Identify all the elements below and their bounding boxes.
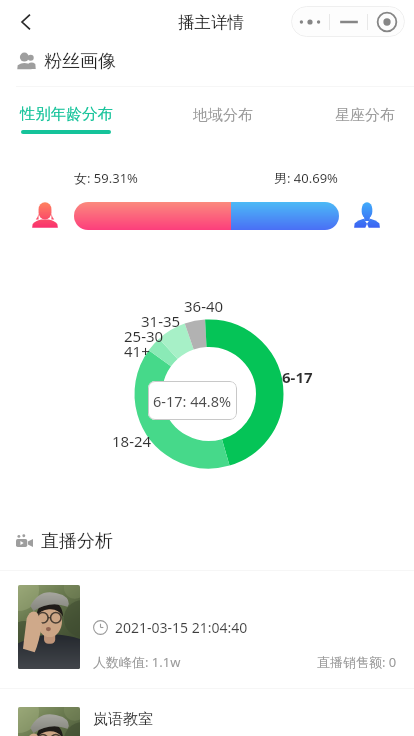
staticText: 直播分析	[41, 530, 113, 553]
staticText: 直播销售额: 0	[317, 653, 397, 671]
button[interactable]: 2021-03-15 21:04:40	[0, 571, 414, 688]
staticText: 6-17: 44.8%	[153, 391, 232, 411]
button[interactable]: 性别年龄分布	[6, 93, 126, 134]
staticText: 性别年龄分布	[20, 104, 113, 124]
staticText: 25-30	[124, 326, 164, 346]
staticText: 粉丝画像	[44, 50, 116, 73]
staticText: 6-17	[282, 367, 313, 387]
staticText: 播主详情	[178, 12, 244, 33]
button[interactable]: 岚语教室	[0, 689, 414, 736]
staticText: 女: 59.31%	[74, 169, 138, 187]
staticText: 18-24	[112, 431, 152, 451]
staticText: 星座分布	[335, 106, 395, 125]
staticText: 41+	[124, 341, 150, 361]
button[interactable]: 星座分布	[314, 93, 414, 134]
button[interactable]: Minimize	[330, 6, 367, 37]
staticText: 岚语教室	[93, 710, 153, 729]
button[interactable]: More	[291, 6, 329, 37]
button[interactable]: 地域分布	[170, 93, 276, 134]
staticText: 36-40	[184, 296, 224, 316]
staticText: 男: 40.69%	[274, 169, 338, 187]
staticText: 31-35	[141, 311, 181, 331]
button[interactable]: Close	[368, 6, 405, 37]
staticText: 地域分布	[193, 106, 253, 125]
staticText: 2021-03-15 21:04:40	[115, 618, 248, 637]
button[interactable]: Back	[8, 4, 44, 40]
staticText: 人数峰值: 1.1w	[93, 653, 181, 671]
